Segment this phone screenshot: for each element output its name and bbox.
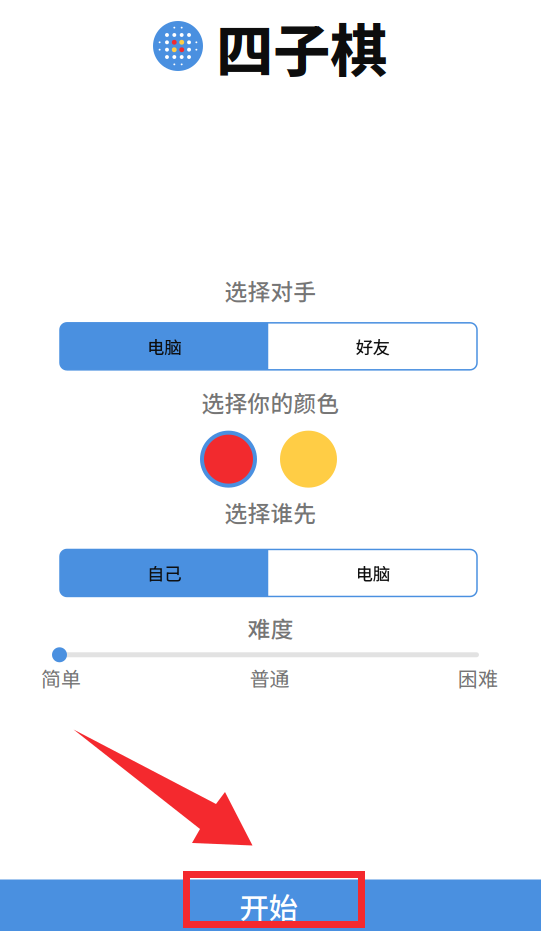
staticText: 选择对手 (224, 274, 316, 307)
staticText: 开始 (239, 885, 297, 927)
staticText: 好友 (356, 334, 390, 359)
button[interactable]: 好友 (268, 323, 477, 370)
button[interactable]: 黄色 (280, 431, 337, 488)
staticText: 简单 (41, 663, 81, 692)
button[interactable]: 自己 (60, 549, 268, 596)
staticText: 选择谁先 (224, 496, 316, 528)
button[interactable]: 红色，已选择 (200, 431, 257, 488)
staticText: 困难 (458, 663, 498, 692)
staticText: 难度 (247, 611, 293, 644)
staticText: 电脑 (356, 560, 390, 585)
button[interactable]: 难度滑块 (0, 647, 67, 662)
button[interactable]: 电脑 (60, 323, 268, 370)
staticText: 自己 (147, 560, 181, 585)
staticText: 电脑 (147, 334, 181, 359)
button[interactable]: 开始 (0, 879, 541, 931)
staticText: 选择你的颜色 (201, 386, 339, 419)
button[interactable]: 电脑 (268, 549, 477, 596)
staticText: 四子棋 (216, 5, 387, 88)
staticText: 普通 (249, 663, 289, 692)
